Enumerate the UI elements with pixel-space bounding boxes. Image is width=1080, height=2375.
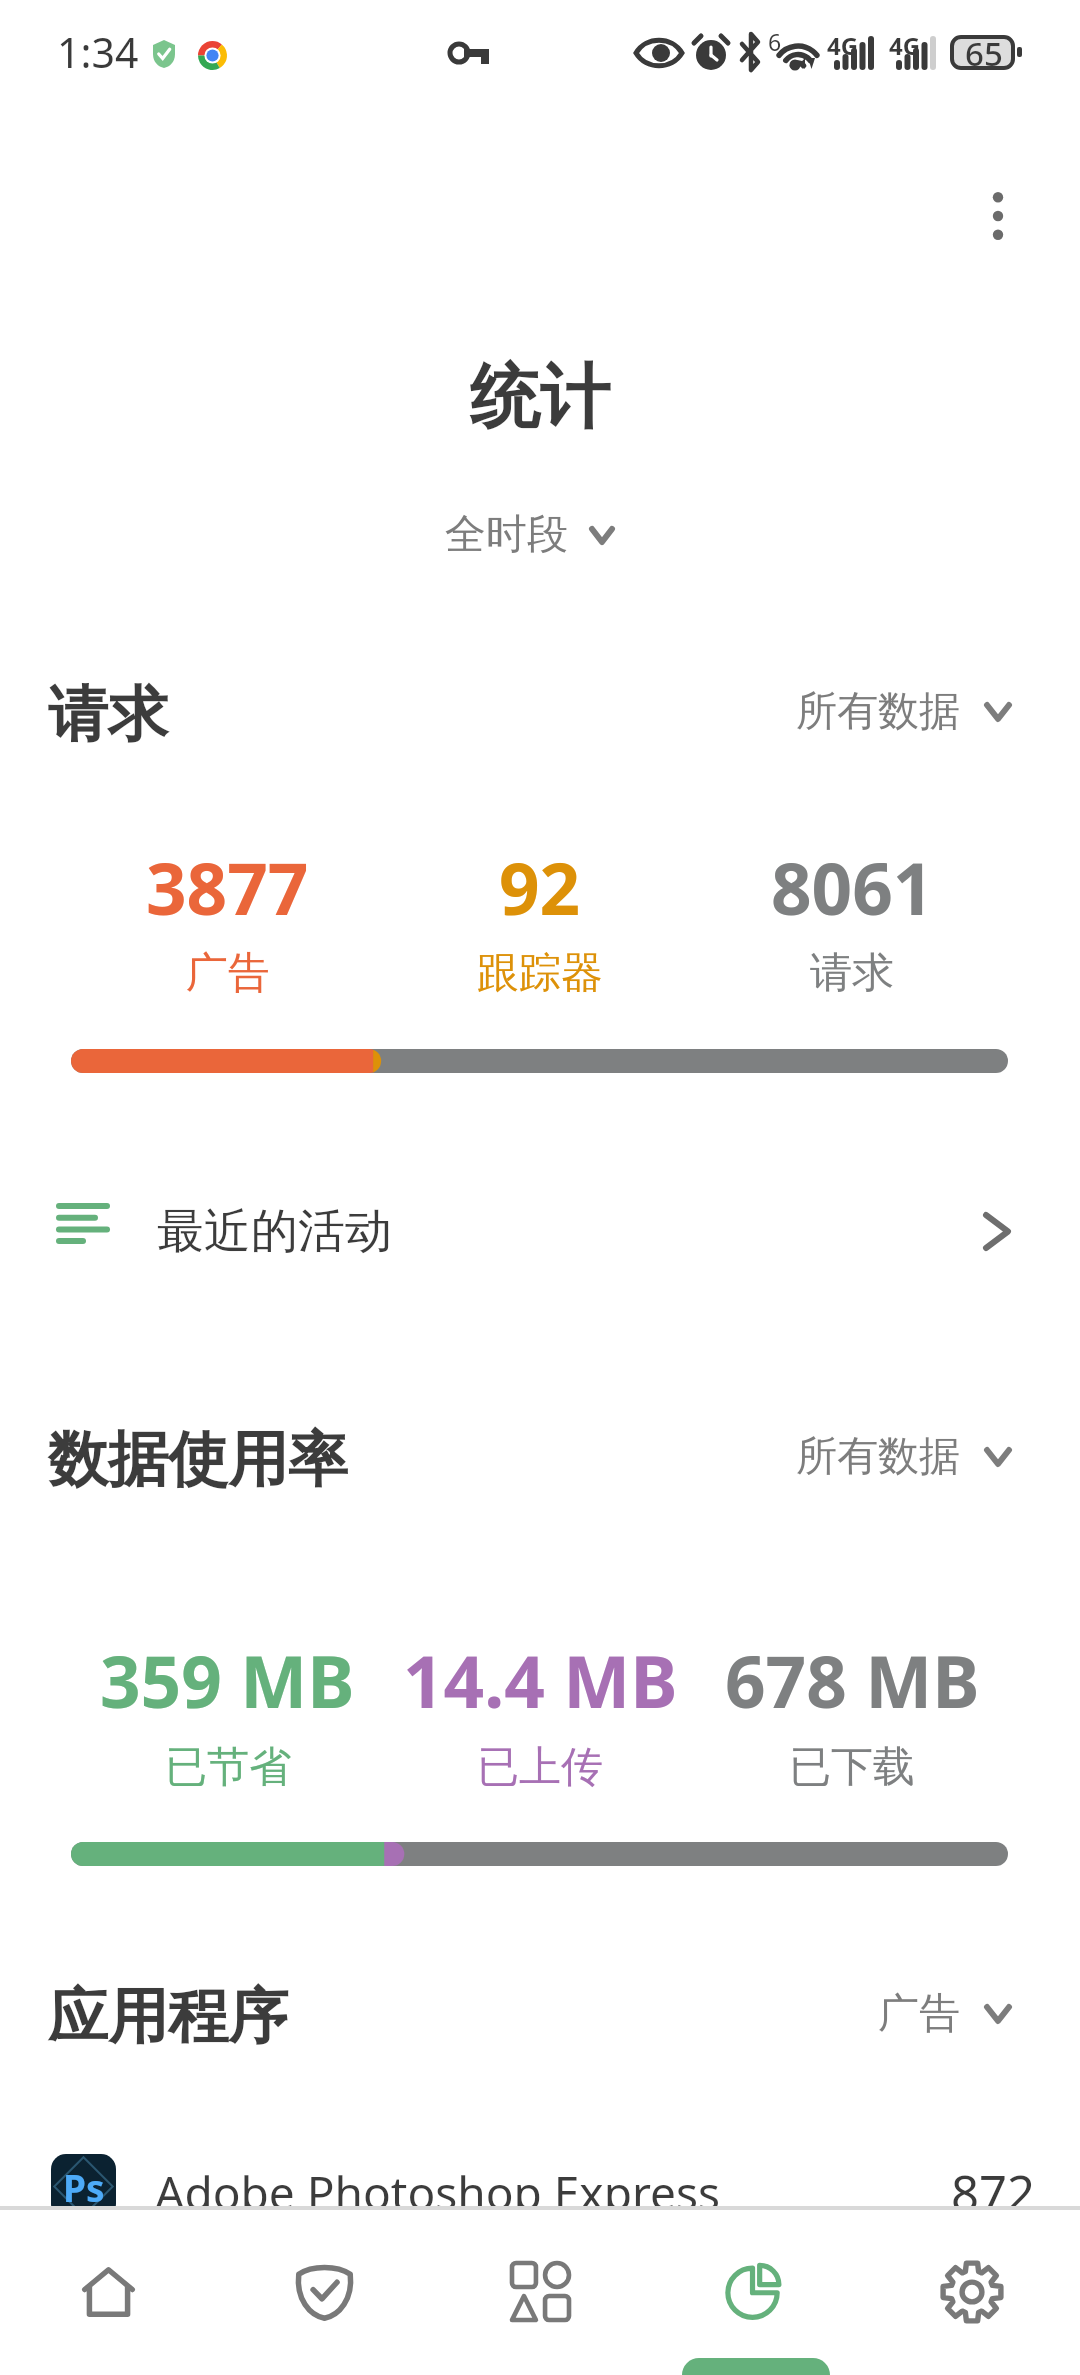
staticText: 全时段 (445, 509, 568, 561)
staticText: 所有数据 (796, 686, 960, 738)
staticText: 请求 (810, 947, 894, 1000)
button[interactable]: Statistics (648, 2210, 864, 2375)
staticText: 所有数据 (796, 1431, 960, 1483)
staticText: 应用程序 (48, 1979, 288, 2055)
button[interactable]: Ps (0, 2137, 1080, 2247)
staticText: 统计 (470, 354, 610, 442)
button[interactable]: Settings (864, 2210, 1080, 2375)
staticText: Ps (63, 2162, 105, 2212)
staticText: 已下载 (789, 1741, 915, 1794)
staticText: 4G (889, 29, 921, 62)
staticText: 广告 (186, 947, 270, 1000)
staticText: 6 (768, 26, 782, 57)
staticText: Adobe Photoshop Express (155, 2161, 721, 2224)
staticText: 最近的活动 (157, 1202, 392, 1261)
staticText: 65 (965, 31, 1003, 76)
button[interactable]: 全时段 (431, 496, 629, 574)
button[interactable]: More options (952, 170, 1044, 262)
staticText: 678 MB (725, 1632, 980, 1729)
button[interactable]: 广告 (870, 1976, 1020, 2052)
staticText: 872 (951, 2159, 1036, 2226)
button[interactable]: Home (0, 2210, 216, 2375)
staticText: 跟踪器 (477, 947, 603, 1000)
button[interactable]: Apps (432, 2210, 648, 2375)
staticText: 请求 (48, 677, 168, 753)
button[interactable]: 所有数据 (788, 1419, 1020, 1495)
button[interactable]: Protection (216, 2210, 432, 2375)
staticText: 数据使用率 (48, 1422, 348, 1498)
button[interactable]: 最近的活动 (0, 1176, 1080, 1286)
staticText: 3877 (146, 839, 309, 936)
staticText: 92 (499, 839, 581, 936)
staticText: 14.4 MB (403, 1632, 678, 1729)
staticText: 已节省 (165, 1741, 291, 1794)
staticText: 4G (827, 29, 859, 62)
staticText: 1:34 (57, 24, 139, 80)
staticText: 广告 (878, 1988, 960, 2040)
staticText: 359 MB (100, 1632, 355, 1729)
staticText: 8061 (771, 839, 934, 936)
button[interactable]: 所有数据 (788, 674, 1020, 750)
staticText: 已上传 (477, 1741, 603, 1794)
